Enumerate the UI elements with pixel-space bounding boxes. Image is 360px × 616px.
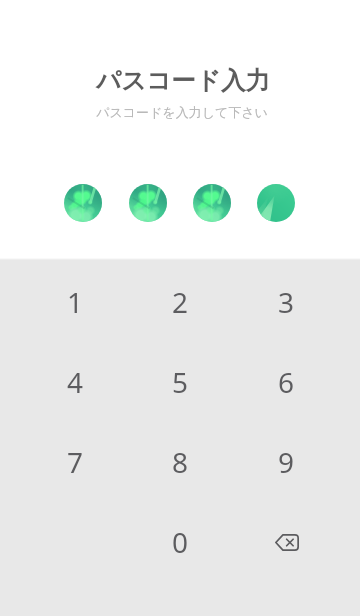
staticText: 2 [172, 283, 189, 321]
staticText: パスコードを入力して下さい [96, 104, 268, 120]
button[interactable]: 1 [23, 262, 128, 342]
staticText: 8 [172, 443, 189, 481]
button[interactable]: 2 [128, 262, 233, 342]
button[interactable]: 7 [23, 422, 128, 502]
button[interactable]: 9 [234, 422, 339, 502]
button[interactable]: 3 [234, 262, 339, 342]
staticText: 7 [67, 443, 84, 481]
staticText: 0 [172, 523, 189, 561]
staticText: 6 [278, 363, 295, 401]
staticText: 3 [278, 283, 295, 321]
button[interactable]: 4 [23, 342, 128, 422]
staticText: 5 [172, 363, 189, 401]
staticText: 4 [67, 363, 84, 401]
button[interactable]: Backspace [234, 502, 339, 582]
button[interactable]: 0 [128, 502, 233, 582]
button[interactable]: 5 [128, 342, 233, 422]
staticText: 9 [278, 443, 295, 481]
button[interactable]: 6 [234, 342, 339, 422]
staticText: 1 [67, 283, 84, 321]
button[interactable]: 8 [128, 422, 233, 502]
staticText: パスコード入力 [96, 65, 270, 96]
